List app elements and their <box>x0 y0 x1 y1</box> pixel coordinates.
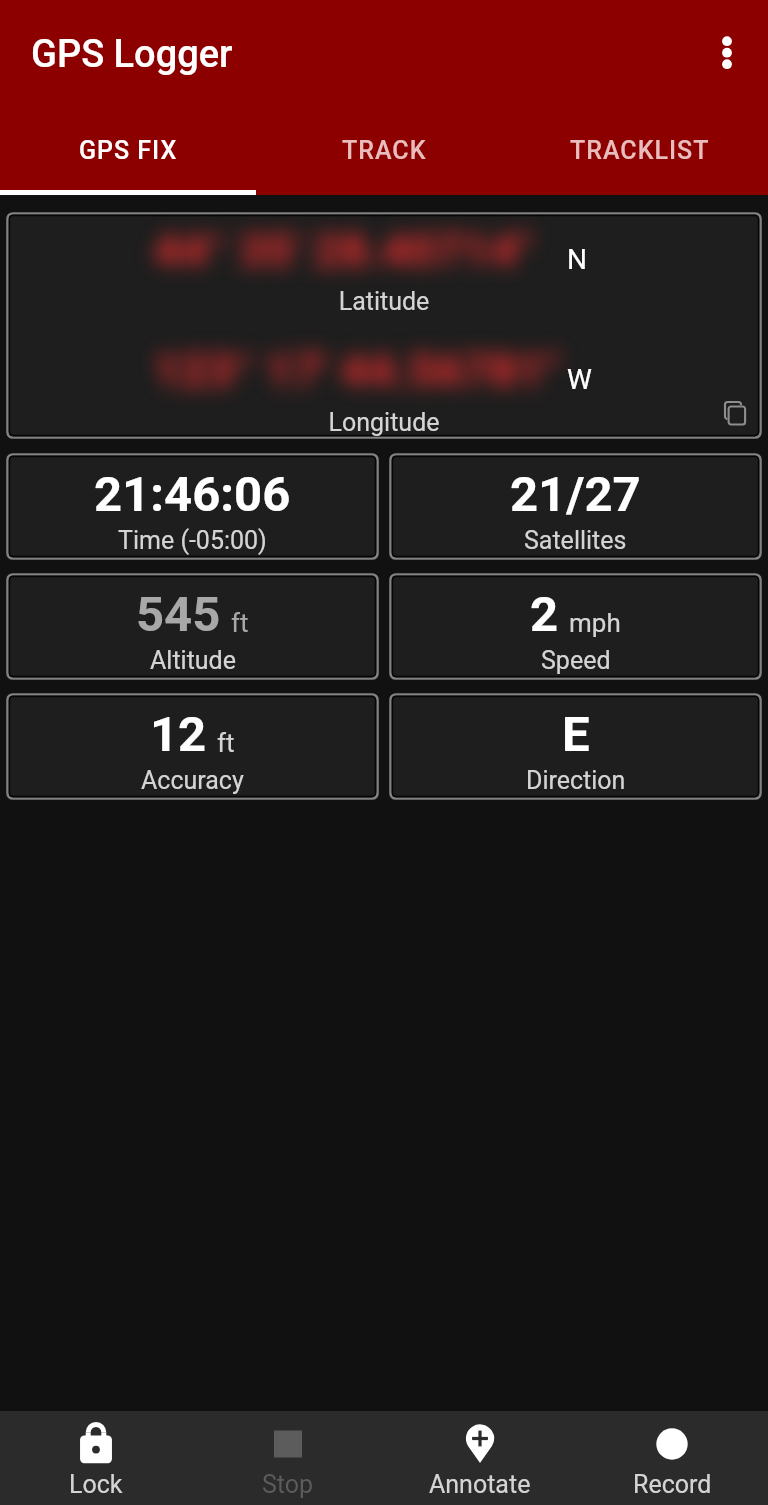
staticText: GPS FIX <box>79 136 178 165</box>
button[interactable]: 2 <box>389 573 762 680</box>
staticText: Latitude <box>6 287 762 316</box>
staticText: 12 <box>150 706 207 763</box>
staticText: mph <box>569 608 621 638</box>
staticText: GPS Logger <box>31 32 233 77</box>
staticText: Speed <box>541 646 611 675</box>
button[interactable]: Lock <box>0 1411 192 1505</box>
staticText: 545 <box>136 586 221 643</box>
button[interactable]: 21/27 <box>389 453 762 560</box>
staticText: N <box>567 243 587 276</box>
button[interactable]: 21:46:06 <box>6 453 379 560</box>
button[interactable]: 545 <box>6 573 379 680</box>
staticText: ft <box>231 608 249 638</box>
staticText: E <box>562 706 590 763</box>
staticText: 21/27 <box>510 466 641 523</box>
staticText: Stop <box>262 1470 314 1499</box>
button[interactable]: 12 <box>6 693 379 800</box>
button[interactable]: More options <box>689 18 765 94</box>
staticText: 44° 35′ 28.40714″ <box>154 224 533 274</box>
staticText: Direction <box>526 766 626 795</box>
button[interactable]: GPS FIX <box>0 112 256 195</box>
staticText: TRACK <box>342 136 427 165</box>
staticText: Accuracy <box>141 766 244 795</box>
staticText: ft <box>217 728 235 758</box>
staticText: Time (-05:00) <box>118 526 267 555</box>
button[interactable]: Copy coordinates <box>717 394 755 432</box>
button[interactable]: TRACK <box>256 112 512 195</box>
staticText: TRACKLIST <box>570 136 710 165</box>
button[interactable]: Stop <box>192 1411 384 1505</box>
staticText: W <box>567 363 592 396</box>
button[interactable]: Annotate <box>384 1411 576 1505</box>
button[interactable]: 44° 35′ 28.40714″ <box>6 212 762 439</box>
staticText: 21:46:06 <box>94 466 291 523</box>
staticText: Longitude <box>6 408 762 437</box>
staticText: 2 <box>530 586 559 643</box>
staticText: Annotate <box>429 1470 531 1499</box>
staticText: Lock <box>69 1470 123 1499</box>
staticText: Altitude <box>150 646 236 675</box>
button[interactable]: E <box>389 693 762 800</box>
button[interactable]: Record <box>576 1411 768 1505</box>
button[interactable]: TRACKLIST <box>512 112 768 195</box>
staticText: 123° 17′ 44.56781″ <box>154 344 560 394</box>
staticText: Satellites <box>524 526 627 555</box>
staticText: Record <box>633 1470 712 1499</box>
